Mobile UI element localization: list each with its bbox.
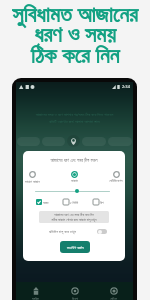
button[interactable]: আজান [71,171,78,182]
staticText: ফজর [43,201,49,204]
staticText: আজান [71,179,78,182]
staticText: সাধারণ আজান [25,179,40,183]
button[interactable]: নোটিফিকেশন [109,171,123,182]
staticText: ৫ মিনিট [70,200,79,205]
button[interactable]: ফজর [36,199,49,205]
button[interactable]: Option [82,137,106,146]
button[interactable]: Option [17,137,40,146]
staticText: প্রতিদিন চালু করে রাখুন [49,229,76,234]
staticText: সংরক্ষণ করুন [67,245,84,250]
staticText: সুবিধামত আজানের ধরণ ও সময় ঠিক করে নিন [0,0,150,70]
button[interactable]: কিবলা [55,282,94,300]
staticText: নোটিফিকেশন [109,179,123,182]
button[interactable]: বিপ [93,199,104,205]
button[interactable]: Toggle daily [97,229,107,234]
button[interactable]: মসজিদ [16,282,55,300]
staticText: মসজিদ [32,297,39,300]
staticText: কিবলা [72,297,78,300]
button[interactable]: Location [67,135,80,147]
staticText: আজানের ধরণ এবং সময় ঠিক করুন [23,157,125,163]
button[interactable]: Option [42,137,65,146]
button[interactable]: ৫ মিনিট [63,199,79,205]
staticText: আজানের ধরণ এবং সময় ঠিক করে নিন সঠিক আজা… [40,212,108,222]
staticText: বিপ [100,201,104,204]
button[interactable]: সাধারণ আজান [25,171,40,183]
staticText: 2:34 [122,84,130,89]
button[interactable]: সেটিংস [94,282,133,300]
button[interactable]: Option [108,137,132,146]
staticText: সেটিংস [110,297,117,300]
button[interactable]: সংরক্ষণ করুন [60,241,90,253]
staticText: আজানের সময় ও ধরণ আপনার পছন্দমত ঠিক করে … [20,112,129,124]
